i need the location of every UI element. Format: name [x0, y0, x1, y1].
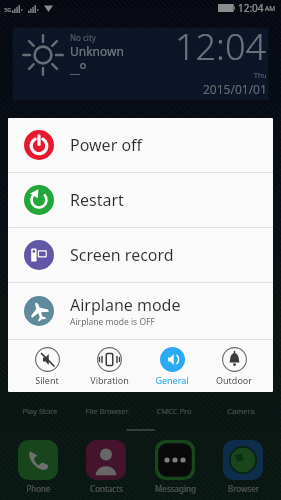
staticText: Power off [70, 134, 143, 156]
staticText: 12:04 [238, 1, 264, 15]
staticText: __ [70, 61, 80, 76]
staticText: Browser [228, 483, 259, 494]
button[interactable]: Contacts [75, 440, 137, 494]
staticText: Camera [210, 406, 272, 416]
staticText: No city [70, 32, 96, 43]
staticText: 2015/01/01 [203, 81, 267, 97]
staticText: Restart [70, 189, 124, 211]
staticText: Contacts [90, 483, 123, 494]
button[interactable]: Silent [17, 347, 77, 386]
staticText: Thu [254, 71, 267, 81]
staticText: Unknown [70, 43, 124, 59]
staticText: Vibration [90, 374, 129, 386]
staticText: General [155, 374, 189, 386]
staticText: File Browser [76, 406, 138, 416]
staticText: 3G [4, 6, 12, 13]
staticText: 12:04 [175, 22, 267, 71]
button[interactable]: Vibration [79, 347, 139, 386]
staticText: Phone [26, 483, 51, 494]
button[interactable]: Phone [7, 440, 69, 494]
staticText: Airplane mode [70, 294, 181, 316]
button[interactable]: Airplane mode [8, 283, 273, 339]
staticText: CMCC Pro [143, 406, 205, 416]
button[interactable]: Screen record [8, 228, 273, 282]
button[interactable]: Messaging [144, 440, 206, 494]
button[interactable]: Restart [8, 173, 273, 227]
staticText: Screen record [70, 244, 174, 266]
staticText: Play Store [9, 406, 71, 416]
button[interactable]: Power off [8, 118, 273, 172]
staticText: , [37, 3, 39, 13]
staticText: Silent [35, 374, 59, 386]
staticText: Airplane mode is OFF [70, 316, 155, 328]
button[interactable]: Outdoor [204, 347, 264, 386]
staticText: , [21, 3, 23, 13]
staticText: Outdoor [216, 374, 252, 386]
staticText: Messaging [155, 483, 196, 494]
button[interactable]: Browser [212, 440, 274, 494]
staticText: AM [265, 4, 276, 13]
button[interactable]: General [142, 347, 202, 386]
